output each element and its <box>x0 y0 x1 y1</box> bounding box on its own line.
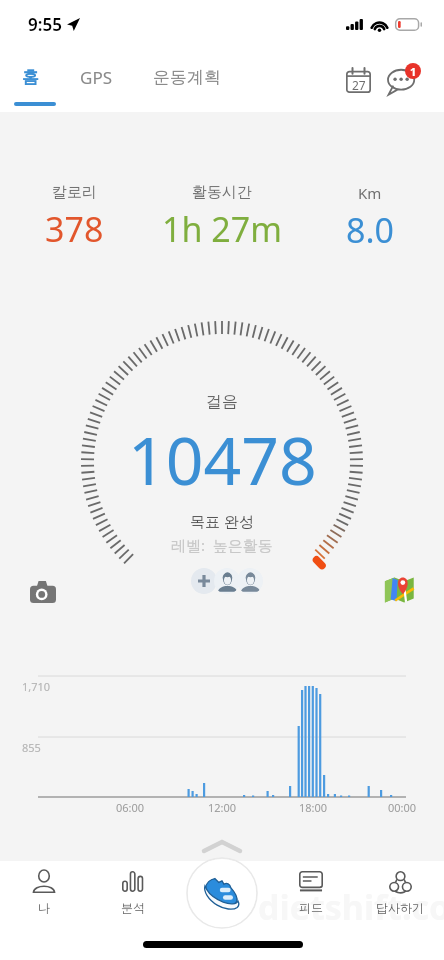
button[interactable]: 칼로리 <box>0 183 148 252</box>
button[interactable]: GPS <box>60 52 132 112</box>
button[interactable]: Friend <box>214 568 240 594</box>
button[interactable]: Messages <box>382 56 430 104</box>
button[interactable]: Add friend <box>191 568 217 594</box>
staticText: 나 <box>38 900 50 915</box>
staticText: 18:00 <box>299 800 328 815</box>
button[interactable]: 운동계획 <box>132 52 242 112</box>
staticText: GPS <box>80 66 112 89</box>
staticText: 활동시간 <box>192 183 252 202</box>
staticText: Km <box>358 183 382 203</box>
button[interactable]: 피드 <box>266 861 355 921</box>
button[interactable]: Map <box>380 570 418 608</box>
staticText: 답사하기 <box>376 900 424 915</box>
staticText: 걸음 <box>206 392 238 412</box>
button[interactable]: 답사하기 <box>355 861 444 921</box>
staticText: 레벨: 높은활동 <box>171 535 273 555</box>
staticText: 1,710 <box>22 679 51 694</box>
staticText: 1 <box>410 64 417 79</box>
button[interactable]: Calendar <box>334 56 382 104</box>
staticText: 378 <box>45 206 104 252</box>
staticText: 피드 <box>299 900 323 915</box>
button[interactable]: Camera <box>21 570 65 614</box>
staticText: 목표 완성 <box>190 511 254 531</box>
staticText: 27 <box>352 77 366 93</box>
staticText: 9:55 <box>28 13 62 36</box>
staticText: 홈 <box>22 67 39 88</box>
staticText: 12:00 <box>208 800 237 815</box>
staticText: 8.0 <box>346 207 395 253</box>
button[interactable]: Start workout <box>188 859 256 927</box>
button[interactable]: Km <box>296 183 444 253</box>
button[interactable]: 나 <box>0 861 88 921</box>
staticText: 10478 <box>128 414 317 504</box>
button[interactable]: Friend <box>237 568 263 594</box>
button[interactable]: 분석 <box>88 861 177 921</box>
staticText: 855 <box>22 740 41 755</box>
staticText: 분석 <box>121 900 145 915</box>
staticText: 06:00 <box>116 800 145 815</box>
button[interactable]: 홈 <box>0 52 60 112</box>
staticText: 1h 27m <box>162 206 282 252</box>
button[interactable]: 활동시간 <box>148 183 296 252</box>
staticText: dietshift.com <box>258 884 444 930</box>
staticText: 운동계획 <box>153 67 221 88</box>
staticText: 칼로리 <box>52 183 97 202</box>
staticText: 00:00 <box>388 800 417 815</box>
